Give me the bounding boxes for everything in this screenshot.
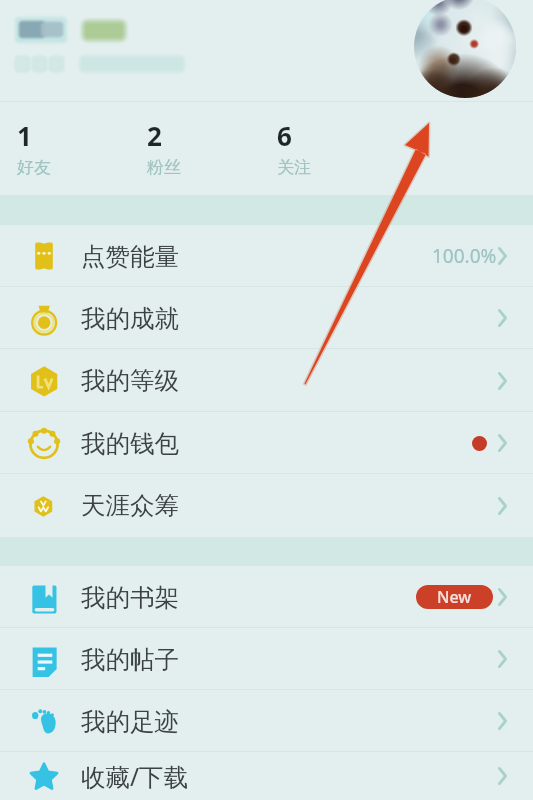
- button[interactable]: 我的足迹: [0, 690, 533, 752]
- button[interactable]: 1: [17, 118, 112, 178]
- button[interactable]: 我的书架: [0, 566, 533, 628]
- button[interactable]: 2: [147, 118, 242, 178]
- staticText: 2: [147, 118, 162, 153]
- button[interactable]: 我的帖子: [0, 628, 533, 690]
- button[interactable]: 收藏/下载: [0, 752, 533, 800]
- staticText: 6: [277, 118, 292, 153]
- staticText: 100.0%: [432, 243, 497, 269]
- button[interactable]: 我的成就: [0, 287, 533, 349]
- button[interactable]: 点赞能量: [0, 225, 533, 287]
- staticText: 点赞能量: [81, 241, 179, 272]
- staticText: 我的钱包: [81, 428, 179, 459]
- staticText: 我的足迹: [81, 706, 179, 737]
- staticText: 好友: [17, 157, 51, 178]
- staticText: 我的等级: [81, 365, 179, 396]
- staticText: 天涯众筹: [81, 490, 179, 521]
- button[interactable]: 6: [277, 118, 372, 178]
- staticText: 粉丝: [147, 157, 181, 178]
- staticText: 收藏/下载: [81, 760, 189, 793]
- button[interactable]: 我的钱包: [0, 412, 533, 474]
- staticText: 1: [17, 118, 32, 153]
- staticText: 我的帖子: [81, 644, 179, 675]
- button[interactable]: 天涯众筹: [0, 474, 533, 537]
- button[interactable]: Profile photo: [414, 0, 516, 98]
- staticText: 关注: [277, 157, 311, 178]
- staticText: 我的书架: [81, 582, 179, 613]
- staticText: New: [437, 586, 472, 608]
- staticText: 我的成就: [81, 303, 179, 334]
- button[interactable]: 我的等级: [0, 349, 533, 412]
